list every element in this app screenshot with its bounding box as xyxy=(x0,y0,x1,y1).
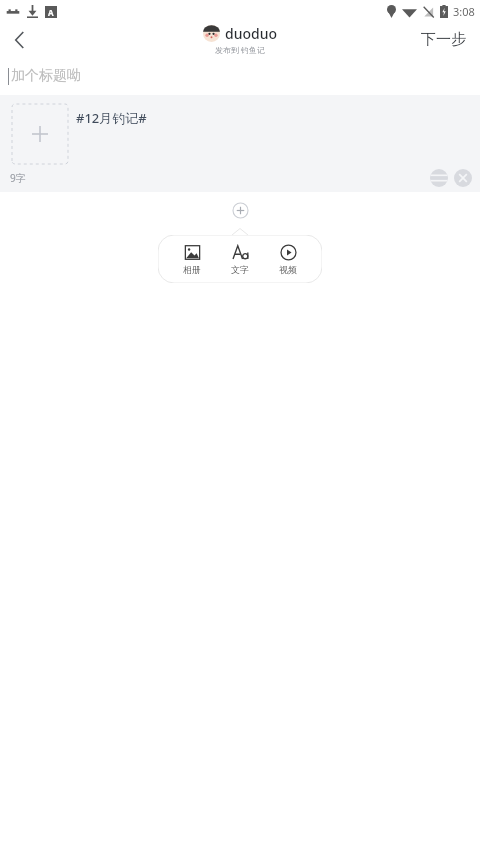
button[interactable]: Back xyxy=(0,22,38,57)
button[interactable]: Add image xyxy=(12,104,68,164)
staticText: 加个标题呦 xyxy=(11,67,81,85)
button[interactable]: Add content xyxy=(232,202,249,219)
staticText: A xyxy=(48,7,54,18)
button[interactable]: 视频 xyxy=(266,241,310,278)
staticText: 发布到 钓鱼记 xyxy=(215,44,266,55)
staticText: 下一步 xyxy=(421,30,466,49)
button[interactable]: Reorder xyxy=(430,169,448,187)
staticText: 3:08 xyxy=(453,4,475,19)
button[interactable]: #12月钓记# xyxy=(76,109,470,127)
staticText: 相册 xyxy=(183,264,201,275)
staticText: 视频 xyxy=(279,264,297,275)
staticText: #12月钓记# xyxy=(76,109,147,127)
button[interactable]: Delete xyxy=(454,169,472,187)
button[interactable]: 相册 xyxy=(170,241,214,278)
staticText: duoduo xyxy=(225,24,278,43)
button[interactable]: 下一步 xyxy=(407,22,480,57)
staticText: 9字 xyxy=(10,171,26,185)
button[interactable]: 文字 xyxy=(218,241,262,278)
staticText: 文字 xyxy=(231,264,249,275)
button[interactable]: 加个标题呦 xyxy=(0,57,480,95)
